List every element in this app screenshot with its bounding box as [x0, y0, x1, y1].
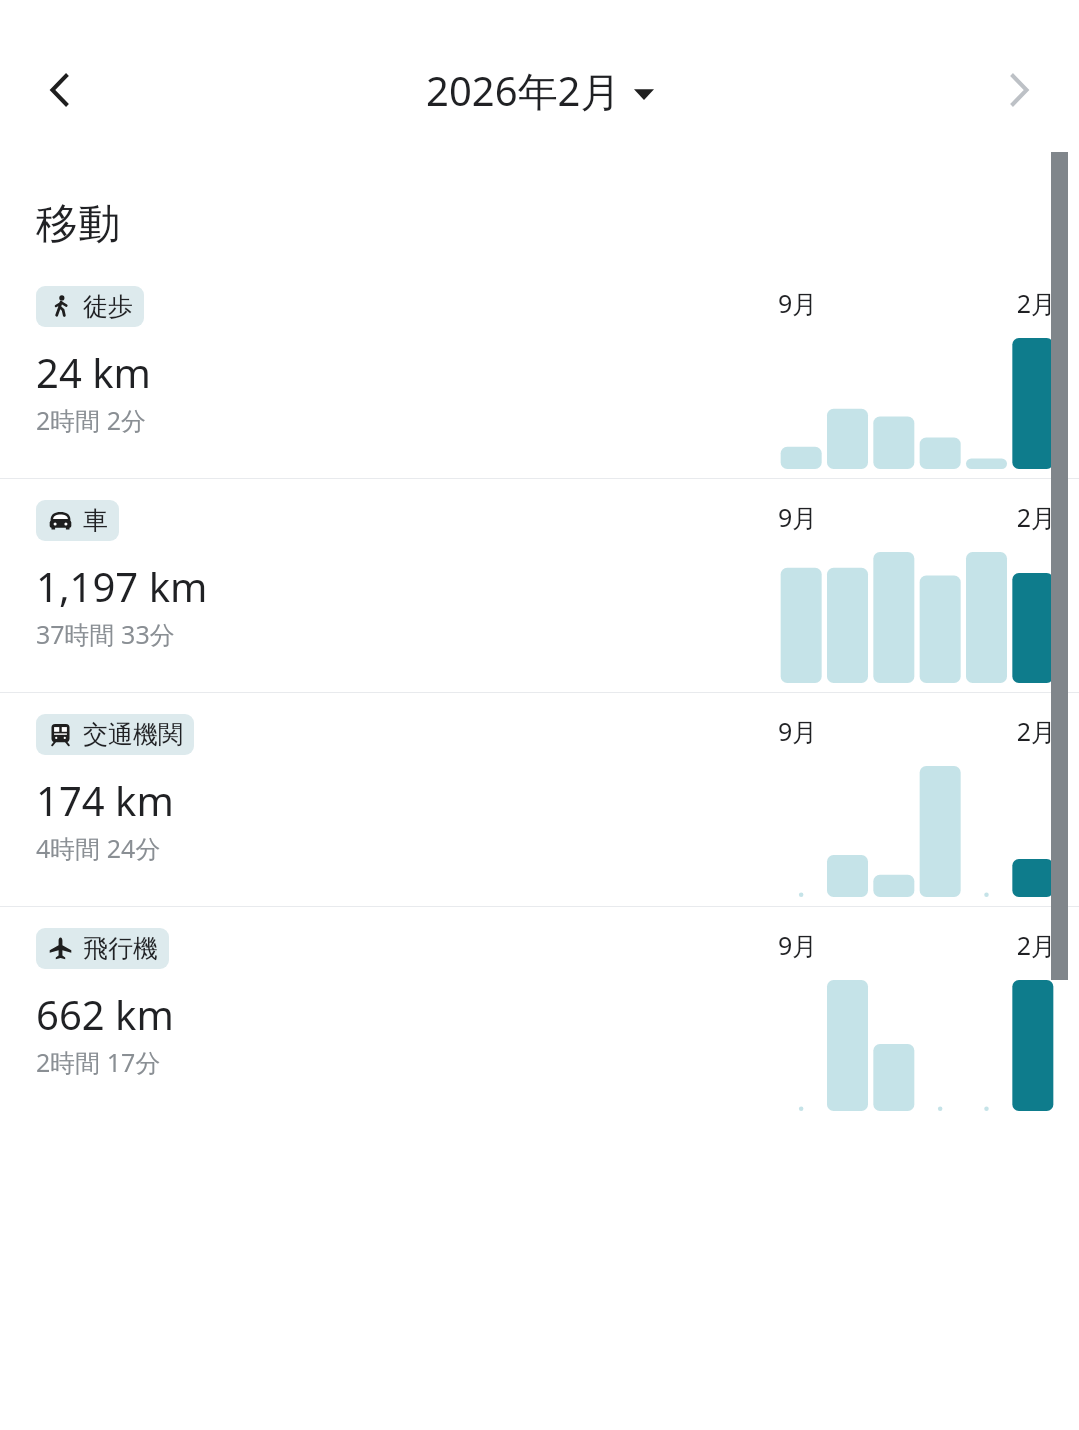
staticText: 車 [83, 505, 108, 536]
button[interactable]: Previous month [22, 52, 98, 128]
staticText: 2月 [917, 500, 1056, 534]
staticText: 2月 [917, 928, 1056, 962]
staticText: 9月 [778, 928, 917, 962]
button[interactable]: 2026年2月 [426, 63, 654, 118]
button[interactable]: 交通機関 [0, 693, 1079, 906]
staticText: 174 km [36, 773, 174, 827]
staticText: 飛行機 [83, 933, 158, 964]
staticText: 9月 [778, 500, 917, 534]
staticText: 2時間 2分 [36, 403, 147, 437]
staticText: 1,197 km [36, 559, 208, 613]
button[interactable]: 飛行機 [0, 907, 1079, 1120]
staticText: 9月 [778, 714, 917, 748]
staticText: 2月 [917, 714, 1056, 748]
staticText: 2時間 17分 [36, 1045, 161, 1079]
staticText: 662 km [36, 987, 174, 1041]
staticText: 交通機関 [83, 719, 183, 750]
staticText: 4時間 24分 [36, 831, 161, 865]
staticText: 9月 [778, 286, 917, 320]
staticText: 24 km [36, 345, 151, 399]
staticText: 37時間 33分 [36, 617, 175, 651]
staticText: 2月 [917, 286, 1056, 320]
staticText: 移動 [36, 198, 120, 251]
staticText: 徒歩 [83, 291, 133, 322]
button[interactable]: Next month [981, 52, 1057, 128]
staticText: 2026年2月 [426, 63, 621, 118]
button[interactable]: 車 [0, 479, 1079, 692]
button[interactable]: 徒歩 [0, 265, 1079, 478]
